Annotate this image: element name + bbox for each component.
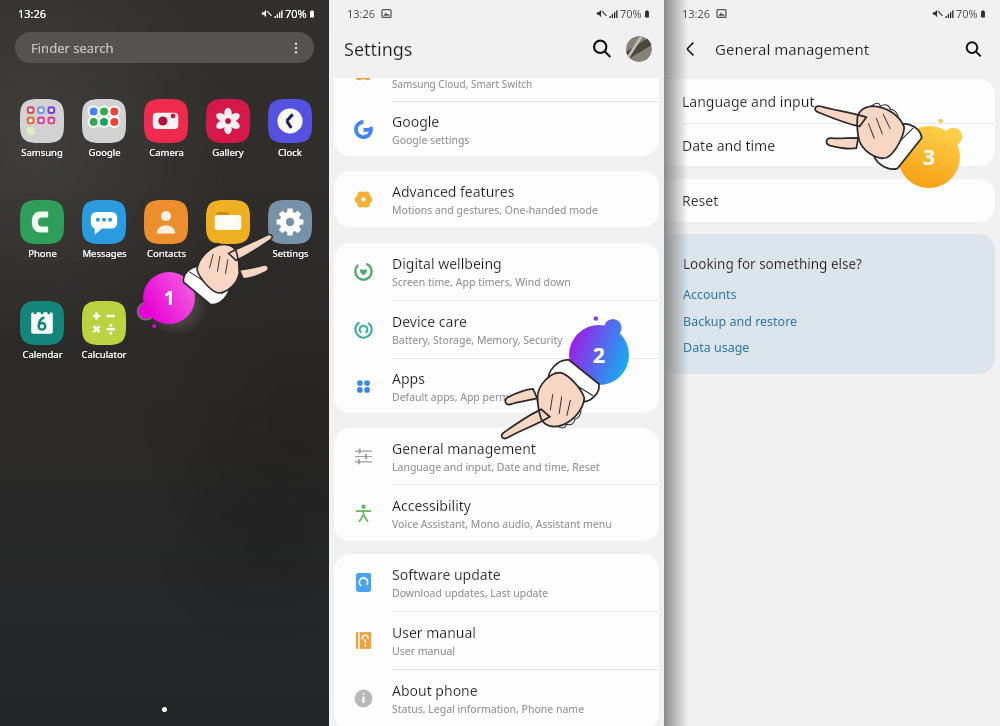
staticText: User manual [392, 623, 476, 642]
button[interactable]: Phone [11, 200, 73, 260]
staticText: Backup and restore [683, 313, 798, 330]
staticText: Apps [392, 369, 425, 388]
staticText: Contacts [147, 247, 186, 260]
staticText: 1 [164, 285, 175, 311]
button[interactable]: Calculator [73, 301, 135, 361]
staticText: Motions and gestures, One-handed mode [392, 203, 598, 217]
staticText: Samsung [21, 146, 63, 159]
staticText: Date and time [682, 136, 776, 155]
staticText: Clock [278, 146, 302, 159]
staticText: Device care [392, 312, 467, 331]
staticText: Gallery [212, 146, 244, 159]
staticText: Samsung Cloud, Smart Switch [392, 78, 533, 91]
staticText: Camera [149, 146, 184, 159]
button[interactable]: Backup and restore [683, 313, 798, 330]
button[interactable]: Accounts [683, 286, 737, 303]
button[interactable]: Finder search [15, 32, 314, 63]
button[interactable]: General management [334, 428, 659, 484]
button[interactable]: Google [334, 102, 659, 156]
staticText: 70% [620, 6, 642, 21]
staticText: 3 [923, 143, 936, 172]
staticText: Messages [82, 247, 127, 260]
staticText: 13:26 [347, 6, 376, 21]
button[interactable]: Camera [135, 99, 197, 159]
staticText: Settings [344, 37, 413, 62]
button[interactable]: Profile [626, 36, 652, 62]
button[interactable]: Date and time [664, 124, 995, 166]
staticText: 2 [593, 341, 606, 370]
button[interactable]: Reset [664, 179, 995, 222]
button[interactable]: About phone [334, 670, 659, 726]
button[interactable]: Search [964, 40, 983, 59]
button[interactable]: Back [681, 39, 701, 59]
staticText: Google [88, 146, 121, 159]
button[interactable]: Search [591, 38, 613, 60]
staticText: Status, Legal information, Phone name [392, 702, 585, 716]
staticText: 70% [285, 6, 307, 21]
button[interactable]: Samsung Cloud, Smart Switch [334, 78, 659, 101]
button[interactable]: Accessibility [334, 485, 659, 541]
staticText: Accessibility [392, 496, 471, 515]
staticText: User manual [392, 644, 455, 658]
staticText: Screen time, App timers, Wind down [392, 275, 571, 289]
staticText: Voice Assistant, Mono audio, Assistant m… [392, 517, 612, 531]
button[interactable]: Apps [334, 359, 659, 413]
button[interactable]: Digital wellbeing [334, 243, 659, 300]
button[interactable]: Gallery [197, 99, 259, 159]
staticText: Language and input [682, 92, 815, 111]
staticText: Battery, Storage, Memory, Security [392, 333, 563, 347]
staticText: Software update [392, 565, 501, 584]
button[interactable]: Device care [334, 301, 659, 358]
staticText: Looking for something else? [683, 255, 862, 273]
button[interactable]: Calendar [11, 301, 73, 361]
button[interactable]: Settings [259, 200, 321, 260]
staticText: General management [392, 439, 536, 458]
staticText: Google [392, 112, 440, 131]
staticText: Settings [272, 247, 309, 260]
staticText: Language and input, Date and time, Reset [392, 460, 600, 474]
staticText: Calendar [22, 348, 63, 361]
staticText: Finder search [31, 39, 114, 57]
button[interactable]: Contacts [135, 200, 197, 260]
staticText: Download updates, Last update [392, 586, 549, 600]
staticText: About phone [392, 681, 478, 700]
staticText: Advanced features [392, 182, 515, 201]
staticText: Calculator [81, 348, 127, 361]
button[interactable]: Messages [73, 200, 135, 260]
staticText: Phone [28, 247, 57, 260]
button[interactable] [197, 200, 259, 260]
button[interactable]: Google [73, 99, 135, 159]
staticText: Accounts [683, 286, 737, 303]
staticText: 13:26 [682, 6, 711, 21]
staticText: Default apps, App permissions [392, 390, 543, 404]
button[interactable]: Clock [259, 99, 321, 159]
staticText: Reset [682, 191, 719, 210]
staticText: Data usage [683, 339, 750, 356]
staticText: Digital wellbeing [392, 254, 502, 273]
button[interactable]: More options [289, 41, 303, 55]
staticText: Google settings [392, 133, 470, 147]
button[interactable]: Software update [334, 554, 659, 611]
staticText: General management [715, 39, 870, 59]
button[interactable]: Advanced features [334, 171, 659, 227]
button[interactable]: Data usage [683, 339, 750, 356]
staticText: 13:26 [18, 6, 47, 21]
button[interactable]: Language and input [664, 79, 995, 123]
button[interactable]: Samsung [11, 99, 73, 159]
button[interactable]: User manual [334, 612, 659, 669]
staticText: 70% [956, 6, 978, 21]
